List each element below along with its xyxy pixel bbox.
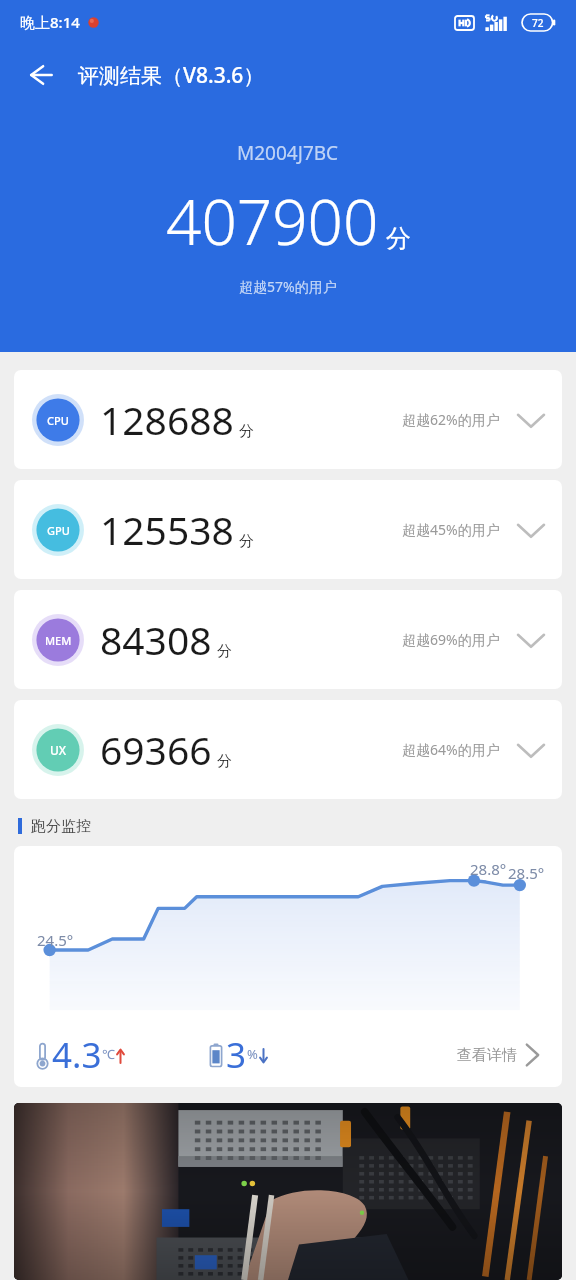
button[interactable]: Expand MEM <box>514 623 548 657</box>
staticText: % <box>247 1045 258 1063</box>
staticText: 跑分监控 <box>31 817 91 836</box>
staticText: 分 <box>386 223 411 254</box>
staticText: 超越45%的用户 <box>402 520 500 539</box>
staticText: 128688 <box>100 393 234 446</box>
staticText: 84308 <box>100 613 212 666</box>
staticText: 评测结果（V8.3.6） <box>78 61 265 90</box>
button[interactable]: Expand UX <box>514 733 548 767</box>
staticText: 超越69%的用户 <box>402 630 500 649</box>
staticText: 3 <box>226 1031 247 1079</box>
staticText: ℃ <box>102 1045 115 1063</box>
staticText: UX <box>50 742 67 758</box>
staticText: 72 <box>532 16 544 30</box>
button[interactable]: Back <box>16 51 64 99</box>
button[interactable]: UX <box>14 700 562 799</box>
button[interactable]: CPU <box>14 370 562 469</box>
staticText: 24.5° <box>37 930 74 950</box>
staticText: 407900 <box>166 179 379 263</box>
button[interactable]: MEM <box>14 590 562 689</box>
staticText: 4.3 <box>52 1031 102 1079</box>
staticText: 分 <box>239 422 254 441</box>
button[interactable]: 查看详情 <box>453 1036 544 1074</box>
staticText: 28.8° <box>470 859 507 879</box>
staticText: 28.5° <box>508 863 545 883</box>
staticText: 超越64%的用户 <box>402 740 500 759</box>
staticText: 超越62%的用户 <box>402 410 500 429</box>
staticText: 超越57%的用户 <box>239 277 337 296</box>
staticText: 分 <box>217 752 232 771</box>
staticText: CPU <box>47 413 69 428</box>
button[interactable]: Article image <box>14 1103 562 1280</box>
staticText: 125538 <box>100 503 234 556</box>
staticText: 69366 <box>100 723 212 776</box>
staticText: 分 <box>217 642 232 661</box>
button[interactable]: Expand GPU <box>514 513 548 547</box>
button[interactable]: GPU <box>14 480 562 579</box>
button[interactable]: 24.5° <box>14 846 562 1087</box>
staticText: 查看详情 <box>457 1046 517 1065</box>
staticText: MEM <box>45 633 72 648</box>
staticText: 分 <box>239 532 254 551</box>
staticText: M2004J7BC <box>237 140 339 166</box>
staticText: GPU <box>47 523 70 538</box>
button[interactable]: Expand CPU <box>514 403 548 437</box>
staticText: 晚上8:14 <box>20 12 80 32</box>
